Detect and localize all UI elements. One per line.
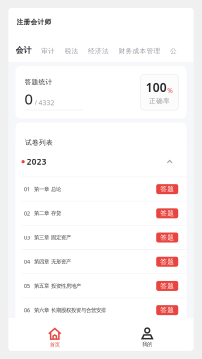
- button[interactable]: 2023: [15, 147, 186, 177]
- staticText: 第一章 总论: [30, 186, 61, 192]
- button[interactable]: 会计: [15, 45, 31, 55]
- button[interactable]: 审计: [41, 47, 55, 55]
- staticText: 100: [146, 79, 167, 95]
- staticText: %: [167, 86, 173, 95]
- staticText: 首页: [50, 341, 60, 348]
- staticText: 公: [170, 47, 177, 55]
- staticText: 试卷列表: [25, 138, 53, 147]
- staticText: 答题: [160, 258, 174, 266]
- button[interactable]: 首页: [8, 318, 101, 351]
- staticText: 经济法: [88, 47, 109, 55]
- button[interactable]: 05: [15, 274, 186, 298]
- staticText: 答题: [160, 209, 174, 217]
- staticText: 审计: [41, 47, 55, 55]
- staticText: 答题: [160, 233, 174, 242]
- staticText: 第三章 固定资产: [30, 234, 71, 241]
- staticText: 答题: [160, 282, 174, 290]
- staticText: / 4332: [34, 98, 54, 107]
- button[interactable]: 03: [15, 226, 186, 249]
- staticText: 第四章 无形资产: [30, 258, 71, 265]
- staticText: 03: [24, 234, 30, 241]
- button[interactable]: 公: [170, 47, 177, 55]
- staticText: 第五章 投资性房地产: [30, 283, 81, 289]
- staticText: 我的: [142, 341, 152, 348]
- staticText: 05: [24, 282, 30, 289]
- staticText: 会计: [15, 45, 31, 55]
- button[interactable]: 财务成本管理: [118, 47, 160, 55]
- staticText: 财务成本管理: [118, 47, 160, 55]
- staticText: 正确率: [149, 97, 170, 105]
- staticText: 答题统计: [24, 78, 52, 86]
- staticText: 04: [24, 258, 30, 265]
- button[interactable]: 02: [15, 202, 186, 225]
- staticText: 注册会计师: [16, 18, 51, 26]
- staticText: 2023: [25, 156, 47, 167]
- staticText: 答题: [160, 185, 174, 193]
- button[interactable]: 税法: [64, 47, 78, 55]
- staticText: 答题: [160, 306, 174, 314]
- staticText: 第六章 长期股权投资与合营安排: [30, 307, 106, 313]
- staticText: 0: [24, 89, 32, 109]
- staticText: 06: [24, 307, 30, 314]
- button[interactable]: 经济法: [88, 47, 109, 55]
- staticText: 第二章 存货: [30, 210, 61, 217]
- staticText: 01: [24, 186, 30, 193]
- button[interactable]: 01: [15, 177, 186, 201]
- button[interactable]: 我的: [101, 318, 193, 351]
- staticText: 税法: [64, 47, 78, 55]
- staticText: 02: [24, 210, 30, 217]
- button[interactable]: 04: [15, 250, 186, 273]
- button[interactable]: 06: [15, 298, 186, 322]
